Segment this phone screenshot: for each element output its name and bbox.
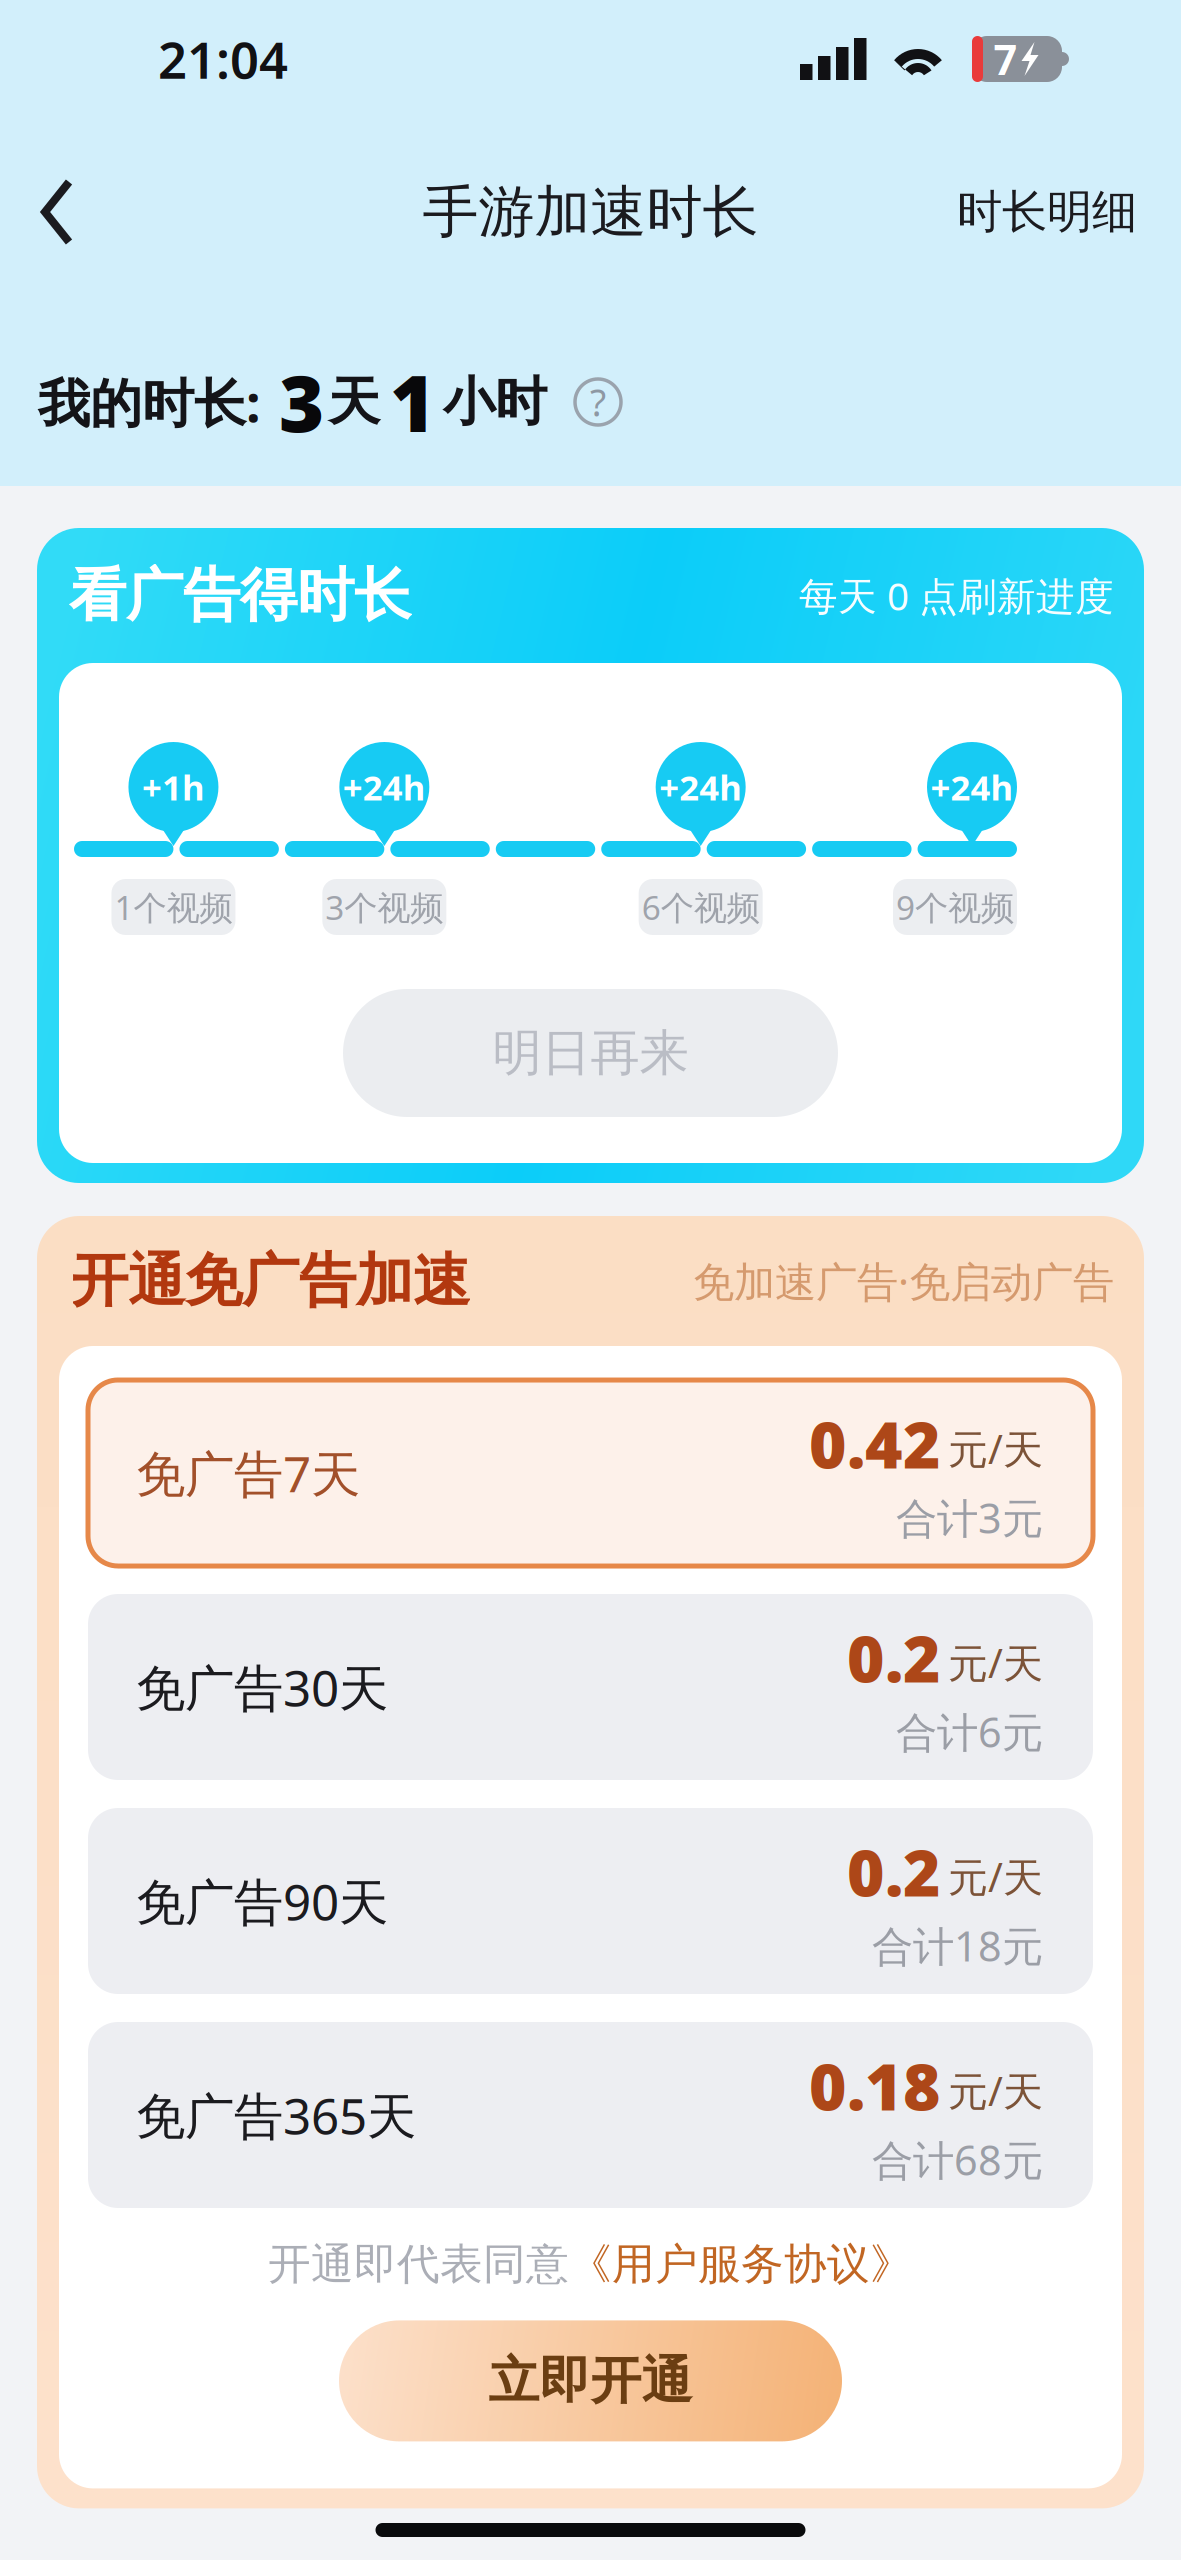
staticText: 看广告得时长 [69, 560, 411, 631]
staticText: 手游加速时长 [422, 178, 758, 246]
staticText: 免广告90天 [136, 1868, 388, 1934]
staticText: +24h [659, 764, 742, 810]
staticText: 免广告30天 [136, 1654, 388, 1720]
staticText: 0.42 [809, 1401, 941, 1486]
staticText: 0.2 [847, 1615, 941, 1700]
staticText: +24h [343, 764, 426, 810]
staticText: 开通即代表同意 [268, 2238, 569, 2290]
button[interactable]: 免广告90天 [88, 1808, 1093, 1994]
staticText: 免广告7天 [136, 1440, 360, 1506]
staticText: 合计6元 [896, 1704, 1043, 1759]
staticText: 3 [279, 351, 324, 453]
staticText: 免广告365天 [136, 2082, 416, 2148]
staticText: 每天 0 点刷新进度 [799, 570, 1114, 621]
staticText: 0.2 [847, 1829, 941, 1914]
staticText: 元/天 [948, 1636, 1043, 1689]
button[interactable]: 《用户服务协议》 [569, 2238, 913, 2290]
button[interactable]: 免广告7天 [88, 1380, 1093, 1566]
staticText: 1个视频 [114, 885, 232, 929]
button[interactable]: 明日再来 [343, 989, 838, 1117]
staticText: 合计68元 [872, 2132, 1043, 2187]
staticText: 时长明细 [957, 184, 1137, 240]
button[interactable]: 立即开通 [339, 2320, 842, 2441]
staticText: 3个视频 [325, 885, 443, 929]
staticText: 合计18元 [872, 1918, 1043, 1973]
button[interactable]: 时长说明 [547, 369, 621, 435]
staticText: 天 [328, 370, 380, 434]
staticText: 合计3元 [896, 1490, 1043, 1545]
staticText: 我的时长: [38, 367, 261, 437]
staticText: 明日再来 [492, 1023, 688, 1083]
staticText: 立即开通 [488, 2350, 692, 2412]
staticText: 6个视频 [642, 885, 760, 929]
staticText: 元/天 [948, 1422, 1043, 1475]
staticText: 元/天 [948, 2064, 1043, 2117]
staticText: +24h [930, 764, 1013, 810]
staticText: 21:04 [158, 25, 288, 93]
staticText: ? [590, 377, 606, 427]
staticText: 开通免广告加速 [71, 1246, 470, 1316]
staticText: 小时 [443, 370, 547, 434]
staticText: 1 [390, 351, 435, 453]
button[interactable]: 免广告365天 [88, 2022, 1093, 2208]
staticText: 0.18 [809, 2043, 941, 2128]
button[interactable]: 时长明细 [937, 160, 1157, 264]
staticText: 《用户服务协议》 [569, 2238, 913, 2290]
staticText: 7 [993, 32, 1017, 86]
staticText: 免加速广告·免启动广告 [693, 1254, 1114, 1308]
staticText: 元/天 [948, 1850, 1043, 1903]
staticText: 9个视频 [896, 885, 1014, 929]
button[interactable]: 返回 [2, 160, 114, 264]
staticText: +1h [142, 764, 205, 810]
button[interactable]: 免广告30天 [88, 1594, 1093, 1780]
